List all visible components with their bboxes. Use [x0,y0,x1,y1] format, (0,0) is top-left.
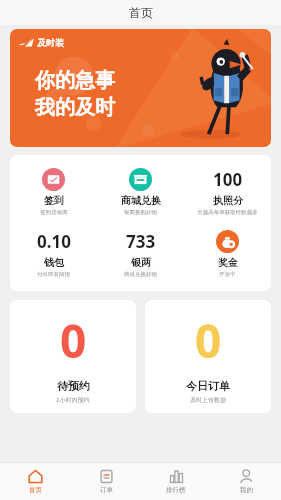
staticText: 商城兑换好物 [124,271,157,278]
button[interactable]: 订单 [71,463,141,500]
staticText: 首页 [29,486,42,494]
staticText: 分越高每单获取经验越多 [197,209,258,216]
staticText: 订单 [100,486,113,494]
staticText: 及时上传数据 [190,396,226,404]
staticText: 今日订单 [186,379,230,393]
staticText: 我的及时 [35,95,115,120]
staticText: 你的急事 [35,68,115,93]
button[interactable]: 0.10 [10,230,97,278]
button[interactable]: 排行榜 [141,463,211,500]
staticText: 0 [195,309,222,372]
button[interactable]: 0 [145,300,271,413]
button[interactable]: 签到 [10,168,97,216]
button[interactable]: 733 [97,230,184,278]
staticText: 待预约 [57,379,90,393]
staticText: 执照分 [213,194,243,207]
staticText: 0 [60,309,87,372]
staticText: 签到 [44,194,64,207]
staticText: 签到送银两 [40,209,68,216]
staticText: 及时装 [37,37,64,48]
staticText: 银两 [131,256,151,269]
button[interactable]: 首页 [0,463,71,500]
button[interactable]: 100 [184,168,271,216]
staticText: 商城兑换 [121,194,161,207]
button[interactable]: 我的 [211,463,281,500]
staticText: 开发中 [219,271,236,278]
button[interactable]: 奖金 [184,230,271,278]
button[interactable]: 商城兑换 [97,168,184,216]
staticText: 钱包 [44,256,64,269]
staticText: 我的 [240,486,253,494]
staticText: 0.10 [37,230,71,253]
staticText: 排行榜 [166,486,186,494]
staticText: 100 [213,168,243,191]
staticText: 奖金 [218,256,238,269]
staticText: 付出即有回报 [37,271,70,278]
button[interactable]: 0 [10,300,136,413]
staticText: 733 [126,230,156,253]
staticText: 2小时内预约 [56,396,90,404]
staticText: 银两换购好物 [124,209,157,216]
button[interactable]: 及时装 [10,29,271,147]
staticText: 首页 [129,5,153,20]
